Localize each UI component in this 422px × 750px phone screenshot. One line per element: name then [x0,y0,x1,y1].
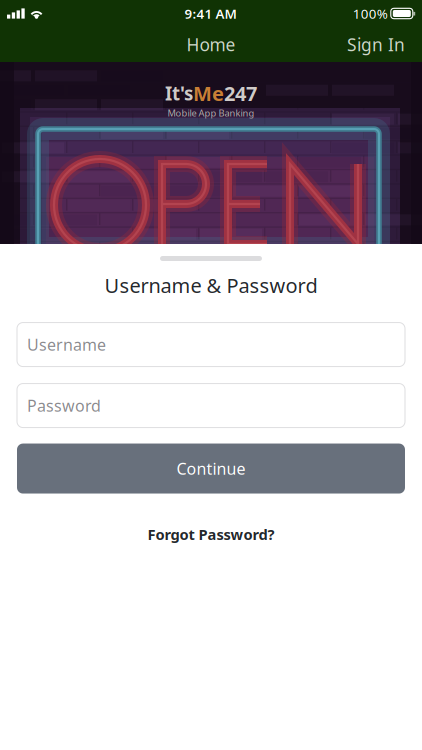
staticText: Home [186,33,235,56]
staticText: Continue [176,458,245,479]
staticText: It's [165,81,193,106]
staticText: Forgot Password? [147,525,274,544]
button[interactable]: Username [17,323,405,367]
staticText: Username & Password [104,272,317,299]
staticText: 100% [353,5,388,22]
staticText: Password [27,395,101,416]
staticText: 247 [224,80,257,107]
button[interactable]: Sign In [331,28,422,61]
staticText: Mobile App Banking [167,107,254,119]
staticText: 9:41 AM [184,5,236,22]
button[interactable]: Home [168,28,253,61]
staticText: Me [193,80,224,107]
button[interactable]: Forgot Password? [133,516,288,553]
staticText: Sign In [347,33,405,56]
button[interactable]: Continue [17,444,405,494]
staticText: Username [27,334,106,355]
button[interactable]: Password [17,384,405,428]
